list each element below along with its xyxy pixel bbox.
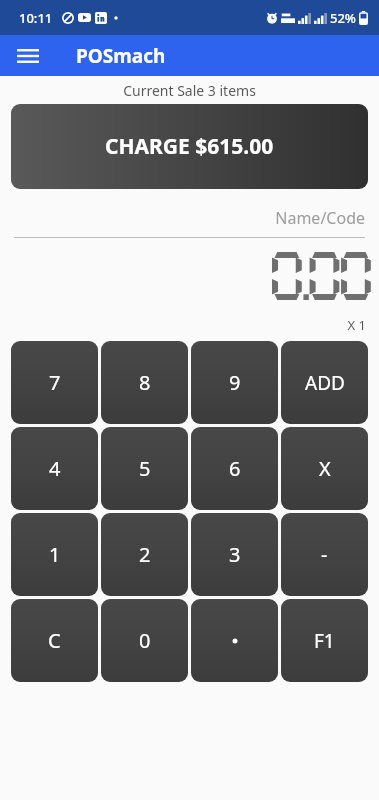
button[interactable]: Open navigation menu bbox=[9, 37, 47, 75]
button[interactable]: Name/Code bbox=[14, 207, 365, 238]
button[interactable] bbox=[191, 599, 278, 682]
button[interactable]: 0 bbox=[101, 599, 188, 682]
staticText: 7 bbox=[49, 369, 61, 396]
staticText: CHARGE $615.00 bbox=[105, 132, 274, 161]
button[interactable]: 6 bbox=[191, 427, 278, 510]
staticText: 4 bbox=[49, 455, 61, 482]
button[interactable]: 8 bbox=[101, 341, 188, 424]
staticText: Name/Code bbox=[14, 207, 365, 229]
staticText: 0 bbox=[139, 627, 151, 654]
staticText: ADD bbox=[305, 370, 345, 396]
button[interactable]: 2 bbox=[101, 513, 188, 596]
staticText: C bbox=[48, 627, 61, 654]
button[interactable]: - bbox=[281, 513, 368, 596]
staticText: Current Sale 3 items bbox=[0, 81, 379, 100]
button[interactable]: 7 bbox=[11, 341, 98, 424]
button[interactable]: 9 bbox=[191, 341, 278, 424]
staticText: 8 bbox=[139, 369, 151, 396]
staticText: 52% bbox=[330, 9, 356, 27]
staticText: 10:11 bbox=[19, 9, 53, 27]
staticText: X 1 bbox=[0, 316, 366, 334]
button[interactable]: C bbox=[11, 599, 98, 682]
staticText: 9 bbox=[229, 369, 241, 396]
button[interactable]: 4 bbox=[11, 427, 98, 510]
staticText: X bbox=[319, 455, 331, 482]
button[interactable]: ADD bbox=[281, 341, 368, 424]
staticText: POSmach bbox=[76, 43, 166, 69]
button[interactable]: 1 bbox=[11, 513, 98, 596]
staticText: 2 bbox=[139, 541, 151, 568]
staticText: 5 bbox=[139, 455, 151, 482]
button[interactable]: F1 bbox=[281, 599, 368, 682]
button[interactable]: CHARGE $615.00 bbox=[11, 104, 368, 189]
staticText: F1 bbox=[314, 628, 335, 654]
button[interactable]: X bbox=[281, 427, 368, 510]
button[interactable]: 5 bbox=[101, 427, 188, 510]
staticText: - bbox=[321, 541, 328, 568]
button[interactable]: 3 bbox=[191, 513, 278, 596]
staticText: 6 bbox=[229, 455, 241, 482]
staticText: 1 bbox=[49, 541, 61, 568]
staticText: 3 bbox=[229, 541, 241, 568]
